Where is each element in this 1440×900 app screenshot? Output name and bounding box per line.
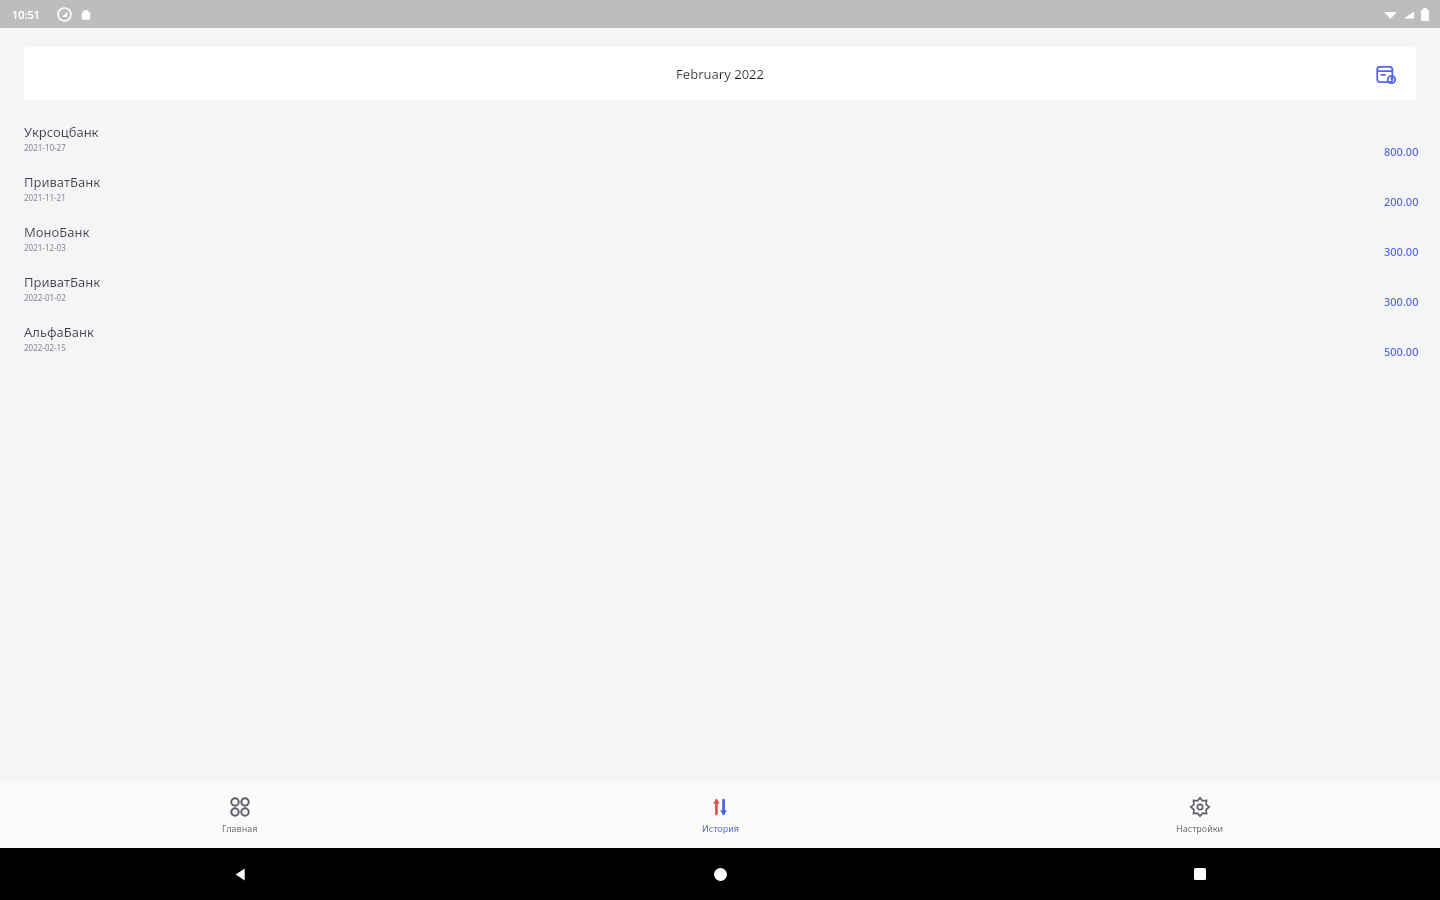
- button[interactable]: Recent apps: [1179, 853, 1221, 895]
- staticText: 2022-01-02: [24, 292, 66, 303]
- button[interactable]: Укрсоцбанк: [0, 116, 1440, 166]
- button[interactable]: ПриватБанк: [0, 266, 1440, 316]
- button[interactable]: Home: [699, 853, 741, 895]
- button[interactable]: АльфаБанк: [0, 316, 1440, 366]
- button[interactable]: История: [480, 783, 960, 848]
- staticText: ПриватБанк: [24, 173, 101, 191]
- staticText: 800.00: [1384, 144, 1419, 159]
- staticText: 2021-10-27: [24, 142, 66, 153]
- staticText: 2022-02-15: [24, 342, 66, 353]
- staticText: АльфаБанк: [24, 323, 94, 341]
- staticText: 300.00: [1384, 294, 1419, 309]
- staticText: 10:51: [12, 7, 41, 22]
- staticText: История: [702, 822, 739, 834]
- staticText: Укрсоцбанк: [24, 123, 99, 141]
- staticText: 200.00: [1384, 194, 1419, 209]
- button[interactable]: МоноБанк: [0, 216, 1440, 266]
- button[interactable]: Настройки: [960, 783, 1440, 848]
- button[interactable]: Back: [219, 853, 261, 895]
- staticText: 500.00: [1384, 344, 1419, 359]
- staticText: Настройки: [1176, 822, 1224, 834]
- staticText: ПриватБанк: [24, 273, 101, 291]
- button[interactable]: ПриватБанк: [0, 166, 1440, 216]
- button[interactable]: Select month: [1368, 56, 1404, 92]
- staticText: Главная: [222, 822, 258, 834]
- staticText: February 2022: [676, 65, 764, 83]
- staticText: 2021-12-03: [24, 242, 66, 253]
- staticText: 300.00: [1384, 244, 1419, 259]
- button[interactable]: Главная: [0, 783, 480, 848]
- staticText: 2021-11-21: [24, 192, 66, 203]
- staticText: МоноБанк: [24, 223, 90, 241]
